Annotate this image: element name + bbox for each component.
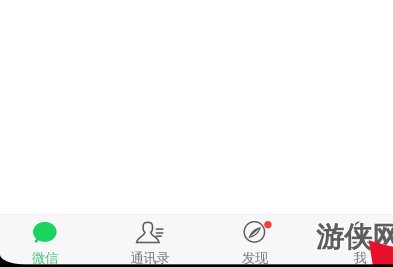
staticText: 游侠网 bbox=[315, 219, 393, 253]
staticText: 游侠网 bbox=[315, 220, 393, 254]
staticText: 游侠网 bbox=[317, 220, 393, 254]
staticText: 发现 bbox=[242, 250, 268, 266]
staticText: 我 bbox=[353, 250, 366, 266]
button[interactable]: 微信 bbox=[0, 215, 94, 265]
staticText: 游侠网 bbox=[316, 220, 393, 254]
button[interactable]: 我 bbox=[311, 215, 393, 265]
staticText: 游侠网 bbox=[316, 219, 393, 253]
button[interactable]: 发现 bbox=[206, 215, 304, 265]
staticText: 游侠网 bbox=[317, 219, 393, 253]
staticText: 微信 bbox=[32, 250, 58, 266]
staticText: 通讯录 bbox=[130, 250, 169, 266]
staticText: 游侠网 bbox=[316, 221, 393, 256]
staticText: 游侠网 bbox=[317, 221, 393, 255]
staticText: 游侠网 bbox=[315, 221, 393, 255]
button[interactable]: 通讯录 bbox=[101, 215, 199, 265]
